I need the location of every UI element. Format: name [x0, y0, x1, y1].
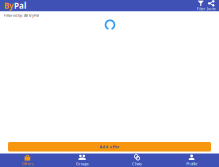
button[interactable]: Offers: [0, 153, 55, 167]
staticText: Filtered by: All ByPal: [4, 12, 39, 18]
button[interactable]: Profile: [164, 153, 219, 167]
button[interactable]: Add offer: [8, 142, 211, 151]
staticText: Filter: [197, 7, 205, 11]
staticText: By: [4, 0, 14, 11]
staticText: Groups: [76, 161, 89, 166]
staticText: Chats: [132, 161, 142, 166]
staticText: Add offer: [99, 144, 119, 149]
staticText: Offers: [21, 161, 33, 166]
button[interactable]: Invite: [206, 0, 216, 11]
button[interactable]: Filter: [195, 0, 206, 11]
staticText: Profile: [186, 161, 197, 166]
button[interactable]: Chats: [109, 153, 164, 167]
staticText: Pal: [14, 0, 26, 11]
staticText: Invite: [207, 7, 216, 11]
button[interactable]: Groups: [55, 153, 110, 167]
